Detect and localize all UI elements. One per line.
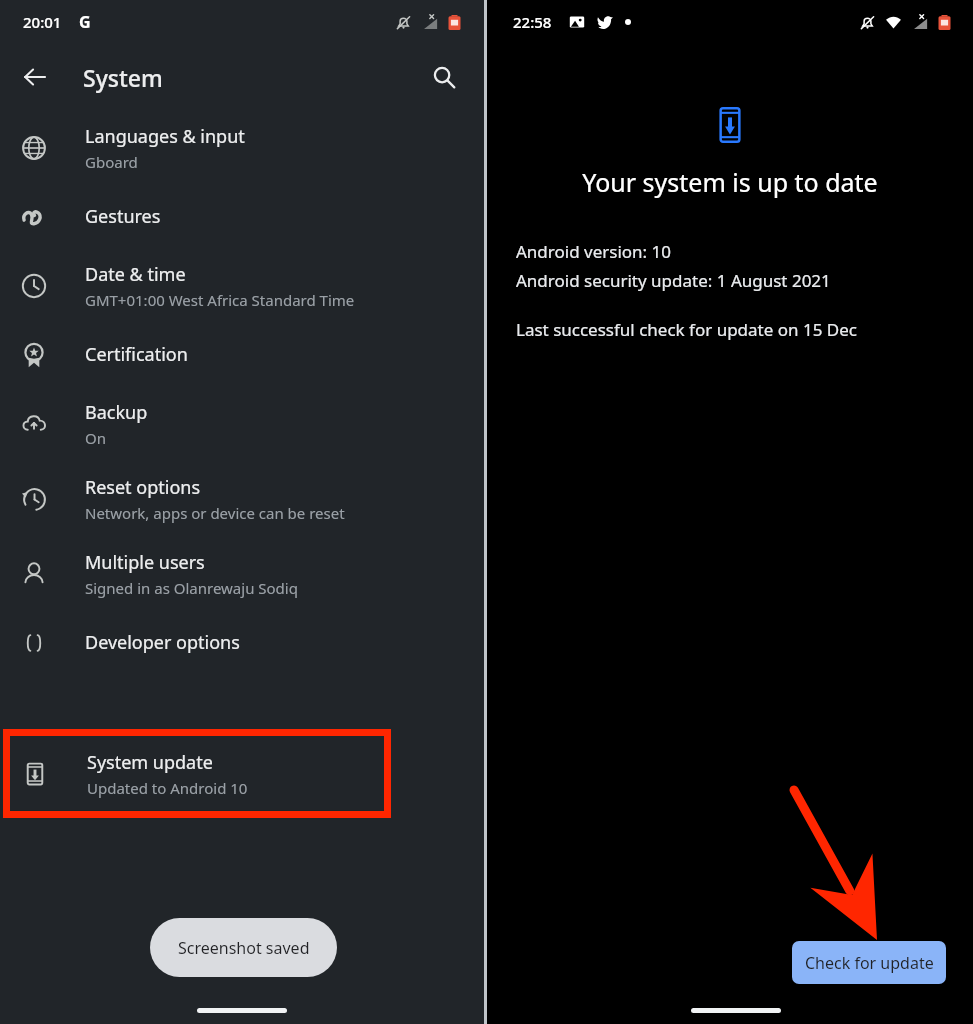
staticText: Screenshot saved (178, 937, 310, 959)
staticText: Languages & input (85, 124, 245, 149)
staticText: Signed in as Olanrewaju Sodiq (85, 578, 298, 598)
staticText: Android version: 10 (516, 240, 672, 263)
button[interactable]: Multiple users (0, 536, 484, 611)
button[interactable]: Back (12, 54, 58, 100)
button[interactable]: Reset options (0, 461, 484, 536)
staticText: Android security update: 1 August 2021 (516, 269, 831, 292)
button[interactable]: Search (421, 54, 467, 100)
button[interactable]: Gestures (0, 185, 484, 248)
staticText: G (79, 11, 91, 33)
button[interactable]: Languages & input (0, 110, 484, 185)
staticText: 22:58 (513, 12, 552, 32)
button[interactable]: Certification (0, 323, 484, 386)
button[interactable]: Date & time (0, 248, 484, 323)
staticText: 20:01 (23, 12, 62, 32)
staticText: Developer options (85, 630, 240, 655)
button[interactable]: Developer options (0, 611, 484, 674)
button[interactable]: Backup (0, 386, 484, 461)
staticText: Gboard (85, 152, 138, 172)
staticText: GMT+01:00 West Africa Standard Time (85, 290, 355, 310)
staticText: Multiple users (85, 550, 205, 575)
button[interactable]: Check for update (792, 941, 946, 984)
staticText: Backup (85, 400, 148, 425)
staticText: System update (87, 750, 213, 775)
staticText: Certification (85, 342, 188, 367)
staticText: Updated to Android 10 (87, 778, 248, 798)
button[interactable]: System update (3, 729, 391, 818)
staticText: Check for update (805, 952, 934, 974)
staticText: Reset options (85, 475, 201, 500)
staticText: Network, apps or device can be reset (85, 503, 345, 523)
staticText: On (85, 428, 106, 448)
staticText: Last successful check for update on 15 D… (516, 318, 857, 341)
staticText: Gestures (85, 204, 161, 229)
staticText: Your system is up to date (582, 165, 878, 199)
staticText: System (83, 62, 163, 93)
staticText: Date & time (85, 262, 186, 287)
